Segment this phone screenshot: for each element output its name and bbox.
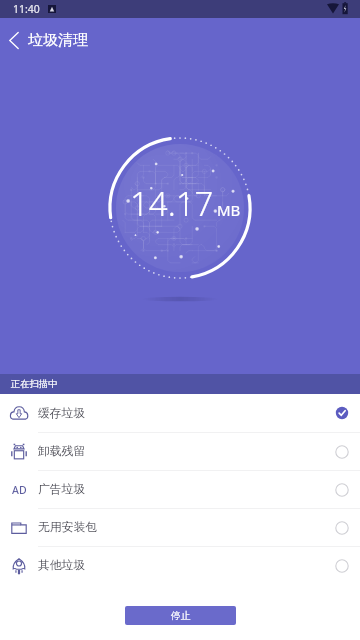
staticText: 卸载残留 [38,444,86,459]
staticText: 正在扫描中 [11,378,58,390]
staticText: 停止 [171,610,191,622]
button[interactable]: AD [0,470,360,508]
staticText: 无用安装包 [38,520,97,535]
button[interactable]: Back [0,22,28,58]
staticText: AD [12,483,27,497]
button[interactable]: 其他垃圾 [0,546,360,584]
button[interactable]: 缓存垃圾 [0,394,360,432]
staticText: 其他垃圾 [38,558,86,573]
staticText: 缓存垃圾 [38,406,86,421]
staticText: 11:40 [13,2,40,16]
staticText: 14.17 [130,181,214,226]
staticText: 广告垃圾 [38,482,86,497]
button[interactable]: 无用安装包 [0,508,360,546]
staticText: 垃圾清理 [28,31,88,50]
button[interactable]: 卸载残留 [0,432,360,470]
staticText: MB [217,200,241,220]
button[interactable]: 停止 [125,606,236,625]
